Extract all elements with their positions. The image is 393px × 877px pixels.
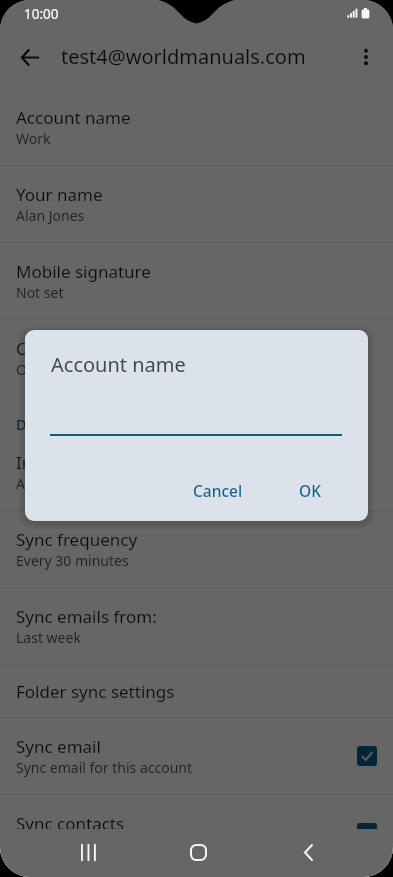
staticText: test4@worldmanuals.com	[61, 43, 306, 70]
staticText: Out of office reply	[16, 337, 160, 360]
button[interactable]: Navigate up	[5, 33, 53, 81]
button[interactable]: Sync frequency	[0, 511, 393, 587]
button[interactable]: Mobile signature	[0, 243, 393, 319]
staticText: Every 30 minutes	[16, 551, 129, 570]
staticText: Folder sync settings	[16, 680, 175, 703]
staticText: 10:00	[24, 5, 59, 23]
staticText: Data usage	[16, 414, 95, 434]
staticText: Sync contacts	[16, 812, 125, 829]
staticText: Alan Jones	[16, 206, 85, 225]
button[interactable]: Out of office reply	[0, 320, 393, 396]
staticText: OK	[299, 480, 321, 501]
button[interactable]: Home	[174, 828, 222, 876]
staticText: All	[16, 474, 33, 493]
staticText: Last week	[16, 628, 81, 647]
staticText: In-app notifications	[16, 451, 172, 474]
button[interactable]: Folder sync settings	[0, 665, 393, 717]
staticText: Sync email	[16, 735, 101, 758]
staticText: Work	[16, 129, 51, 148]
staticText: Mobile signature	[16, 260, 151, 283]
button[interactable]: OK	[285, 471, 335, 510]
button[interactable]: Sync contacts	[0, 795, 393, 829]
staticText: Off	[16, 360, 37, 379]
staticText: Sync frequency	[16, 528, 138, 551]
staticText: Account name	[16, 106, 131, 129]
staticText: Cancel	[193, 480, 243, 501]
staticText: Sync email for this account	[16, 758, 193, 777]
button[interactable]: Back	[284, 828, 332, 876]
button[interactable]: Sync emails from:	[0, 588, 393, 664]
button[interactable]: Cancel	[179, 471, 257, 510]
button[interactable]: Account name	[0, 89, 393, 165]
button[interactable]: More options	[342, 33, 390, 81]
button[interactable]: In-app notifications	[0, 434, 393, 510]
staticText: Sync emails from:	[16, 605, 157, 628]
button[interactable]: Sync email	[0, 718, 393, 794]
staticText: Not set	[16, 283, 64, 302]
button[interactable]: Recent apps	[64, 828, 112, 876]
staticText: Your name	[16, 183, 103, 206]
staticText: Account name	[51, 351, 186, 378]
button[interactable]: Your name	[0, 166, 393, 242]
